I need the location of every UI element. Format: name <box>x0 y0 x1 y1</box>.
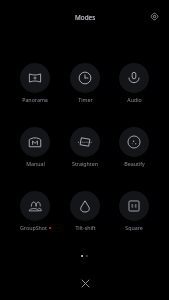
button[interactable]: GroupShot <box>12 191 58 231</box>
button[interactable]: Tilt-shift <box>62 191 108 231</box>
button[interactable]: Square <box>111 191 157 231</box>
staticText: Straighten <box>72 160 98 167</box>
staticText: Audio <box>127 96 142 103</box>
button[interactable]: Close <box>75 273 95 293</box>
button[interactable]: Panorama <box>12 63 58 103</box>
staticText: Square <box>125 224 143 231</box>
button[interactable]: Manual <box>12 127 58 167</box>
staticText: Beautify <box>124 160 145 167</box>
staticText: Tilt-shift <box>75 224 96 231</box>
button[interactable]: Audio <box>111 63 157 103</box>
button[interactable]: Beautify <box>111 127 157 167</box>
button[interactable]: Settings <box>144 6 164 26</box>
staticText: Timer <box>78 96 93 103</box>
staticText: GroupShot <box>20 224 47 231</box>
button[interactable]: Timer <box>62 63 108 103</box>
staticText: Manual <box>26 160 45 167</box>
button[interactable]: Straighten <box>62 127 108 167</box>
staticText: Modes <box>75 13 96 22</box>
staticText: Panorama <box>22 96 48 103</box>
